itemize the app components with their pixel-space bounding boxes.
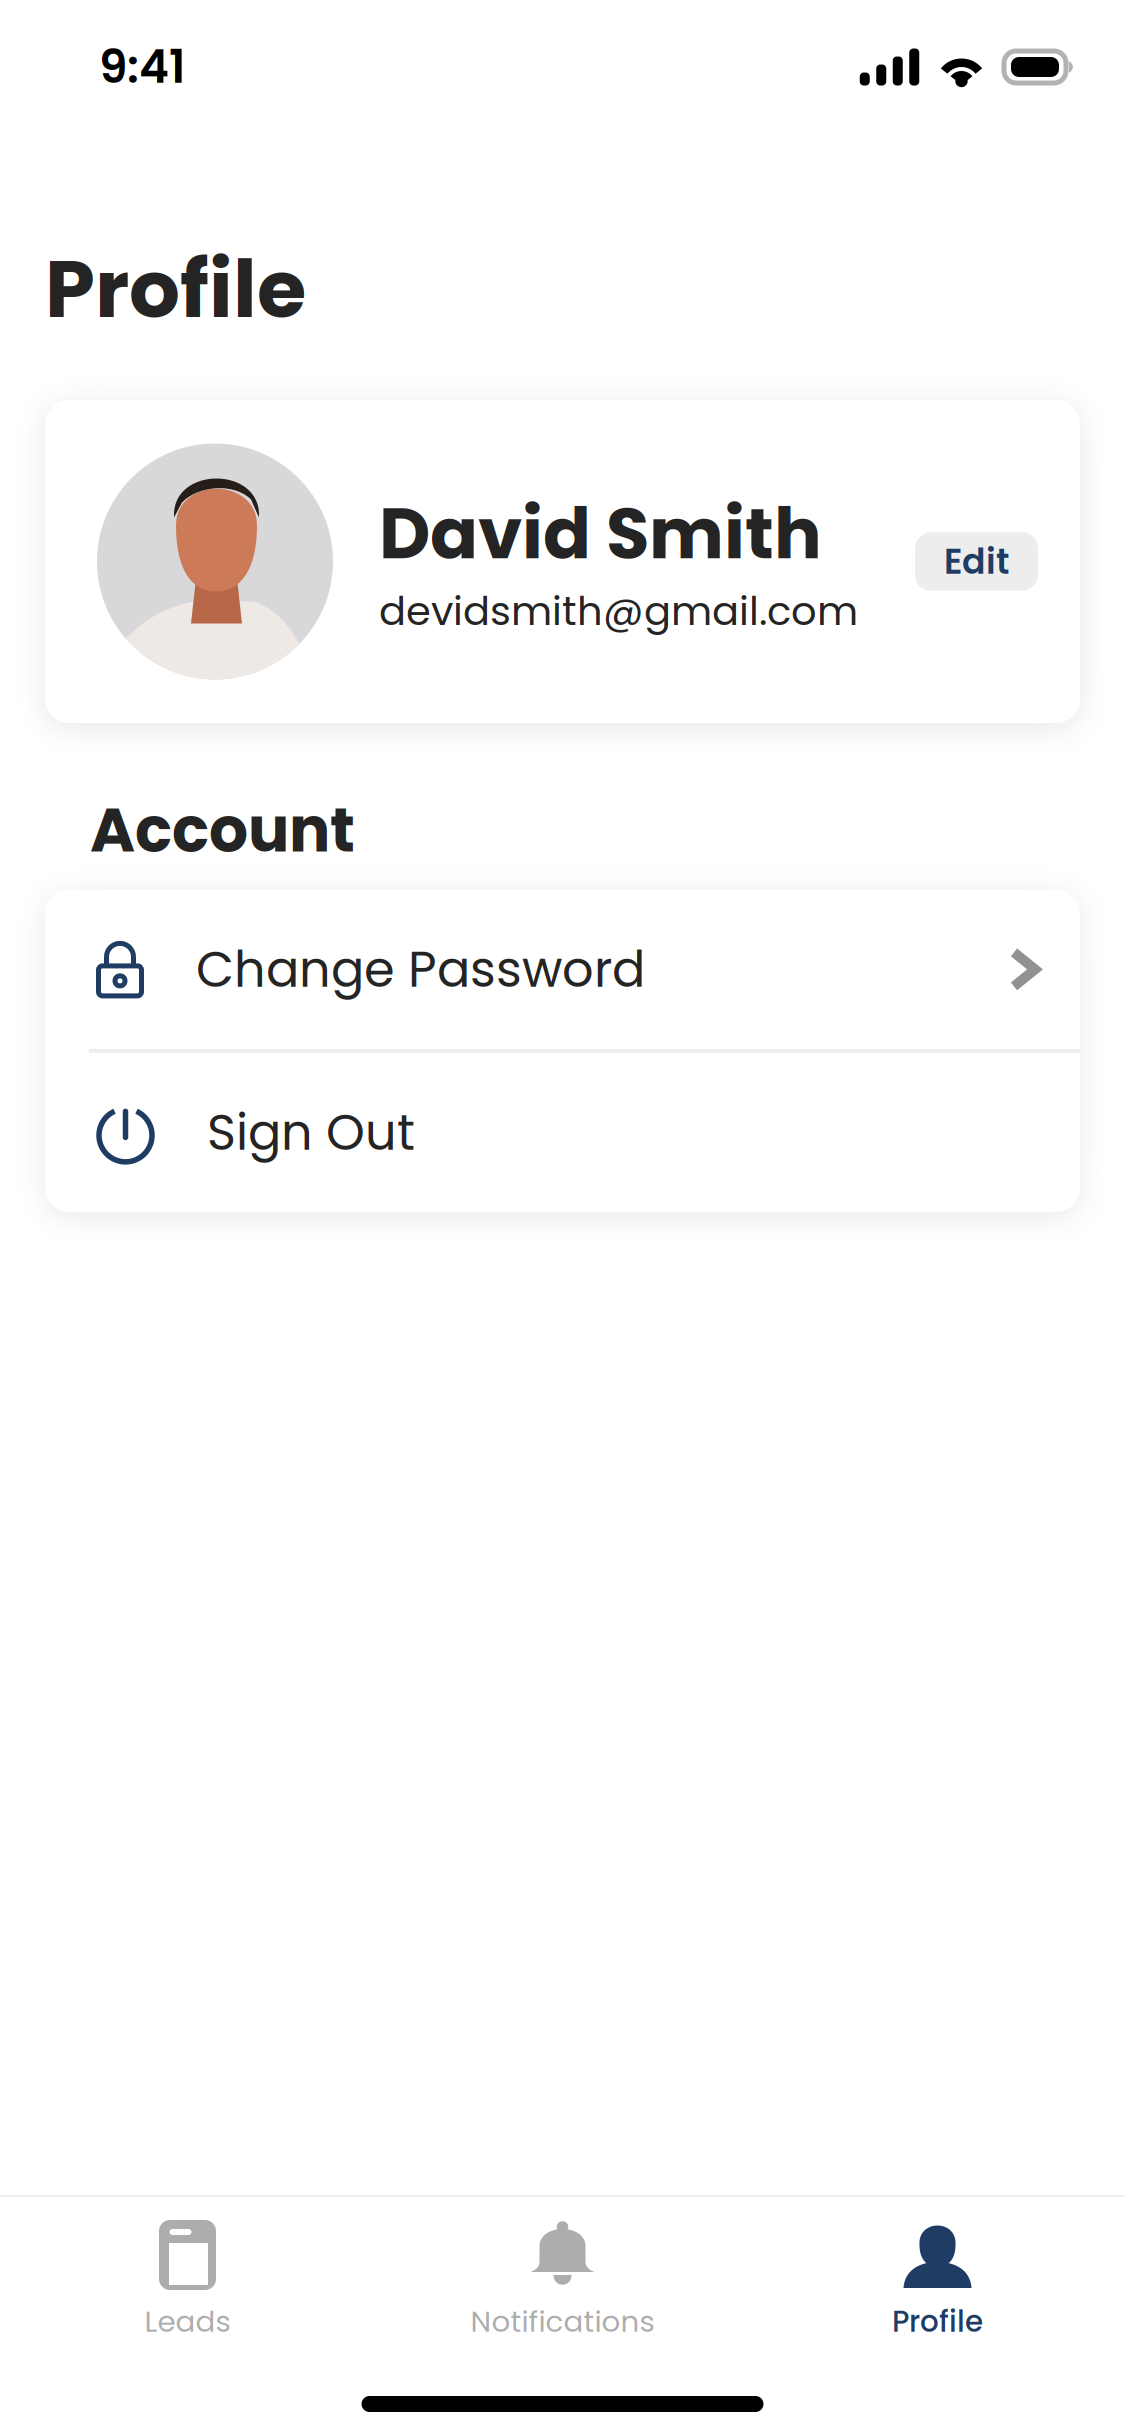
staticText: Account bbox=[90, 787, 355, 873]
staticText: Leads bbox=[144, 2301, 230, 2342]
button[interactable]: Change Password bbox=[45, 890, 1080, 1049]
staticText: 9:41 bbox=[99, 35, 185, 99]
button[interactable]: Profile bbox=[750, 2197, 1125, 2358]
staticText: Profile bbox=[892, 2301, 983, 2342]
button[interactable]: Sign Out bbox=[45, 1053, 1080, 1212]
staticText: Sign Out bbox=[207, 1098, 415, 1167]
button[interactable]: Leads bbox=[0, 2197, 375, 2358]
staticText: Change Password bbox=[196, 935, 645, 1004]
staticText: Profile bbox=[45, 233, 306, 345]
button[interactable]: Edit bbox=[915, 532, 1038, 591]
staticText: Edit bbox=[944, 537, 1009, 586]
staticText: David Smith bbox=[379, 484, 822, 583]
button[interactable]: Notifications bbox=[375, 2197, 750, 2358]
staticText: Notifications bbox=[470, 2301, 654, 2342]
staticText: devidsmith@gmail.com bbox=[379, 583, 858, 639]
